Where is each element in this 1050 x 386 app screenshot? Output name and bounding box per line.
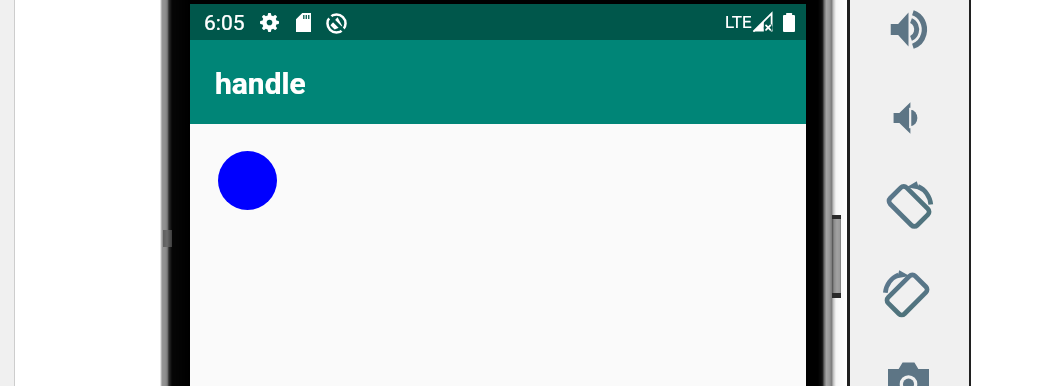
staticText: LTE (725, 12, 752, 32)
button[interactable]: Take screenshot (888, 359, 929, 386)
button[interactable]: Rotate left (887, 181, 932, 229)
button[interactable]: Volume down (893, 101, 922, 135)
staticText: 6:05 (204, 11, 245, 36)
staticText: handle (215, 66, 306, 101)
button[interactable]: Blue circle handle (218, 151, 277, 210)
button[interactable]: Rotate right (885, 270, 930, 317)
button[interactable]: handle (190, 40, 806, 124)
button[interactable]: Volume up (890, 11, 927, 48)
